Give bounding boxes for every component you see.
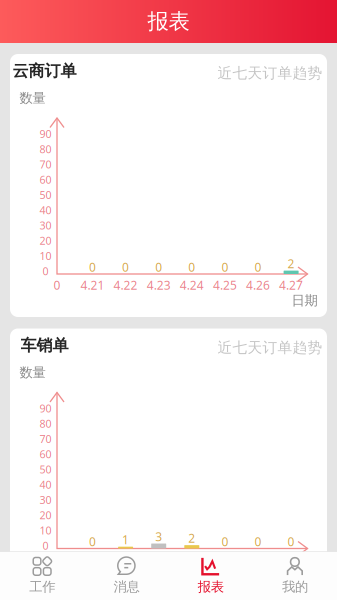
staticText: 0: [221, 533, 228, 549]
staticText: 40: [39, 477, 51, 492]
staticText: 0: [89, 533, 96, 549]
staticText: 4.24: [180, 277, 204, 293]
staticText: 0: [42, 538, 48, 553]
staticText: 0: [89, 259, 96, 275]
staticText: 日期: [291, 567, 317, 583]
staticText: 1: [122, 532, 129, 548]
staticText: 0: [188, 259, 195, 275]
button[interactable]: 报表: [168, 552, 253, 600]
staticText: 工作: [29, 579, 55, 595]
staticText: 70: [39, 432, 51, 446]
staticText: 4.23: [147, 277, 171, 293]
button[interactable]: 工作: [0, 552, 84, 600]
staticText: 3: [155, 528, 162, 544]
staticText: 0: [254, 533, 261, 549]
staticText: 90: [39, 401, 51, 415]
staticText: 60: [39, 172, 51, 187]
staticText: 0: [254, 259, 261, 275]
staticText: 2: [288, 256, 295, 271]
staticText: 日期: [291, 292, 317, 309]
staticText: 40: [39, 203, 51, 217]
staticText: 4.27: [279, 551, 303, 567]
button[interactable]: 我的: [253, 552, 337, 600]
staticText: 90: [39, 127, 51, 141]
staticText: 车销单: [20, 336, 68, 355]
staticText: 0: [288, 533, 295, 549]
staticText: 4.21: [80, 277, 104, 293]
staticText: 报表: [198, 579, 224, 595]
staticText: 4.22: [114, 551, 138, 567]
staticText: 20: [39, 508, 51, 522]
staticText: 0: [42, 264, 48, 278]
staticText: 4.24: [180, 551, 204, 567]
staticText: 10: [39, 523, 51, 537]
staticText: 2: [188, 530, 195, 546]
staticText: 数量: [20, 364, 46, 381]
staticText: 30: [39, 218, 51, 232]
staticText: 4.27: [279, 277, 303, 293]
staticText: 60: [39, 447, 51, 461]
staticText: 20: [39, 233, 51, 248]
staticText: 消息: [113, 579, 139, 595]
staticText: 0: [155, 259, 162, 275]
staticText: 50: [39, 188, 51, 202]
staticText: 4.26: [246, 277, 270, 293]
staticText: 4.25: [213, 277, 237, 293]
staticText: 0: [53, 277, 60, 293]
staticText: 30: [39, 493, 51, 507]
staticText: 云商订单: [12, 61, 76, 81]
staticText: 80: [39, 416, 51, 431]
staticText: 50: [39, 462, 51, 476]
button[interactable]: 消息: [84, 552, 168, 600]
staticText: 0: [122, 259, 129, 275]
staticText: 70: [39, 157, 51, 171]
staticText: 报表: [147, 8, 189, 35]
staticText: 10: [39, 249, 51, 263]
staticText: 近七天订单趋势: [217, 64, 322, 82]
staticText: 我的: [282, 579, 308, 595]
staticText: 数量: [20, 90, 46, 106]
staticText: 近七天订单趋势: [217, 338, 322, 356]
staticText: 4.22: [114, 277, 138, 293]
staticText: 80: [39, 142, 51, 156]
staticText: 4.25: [213, 551, 237, 567]
staticText: 0: [221, 259, 228, 275]
